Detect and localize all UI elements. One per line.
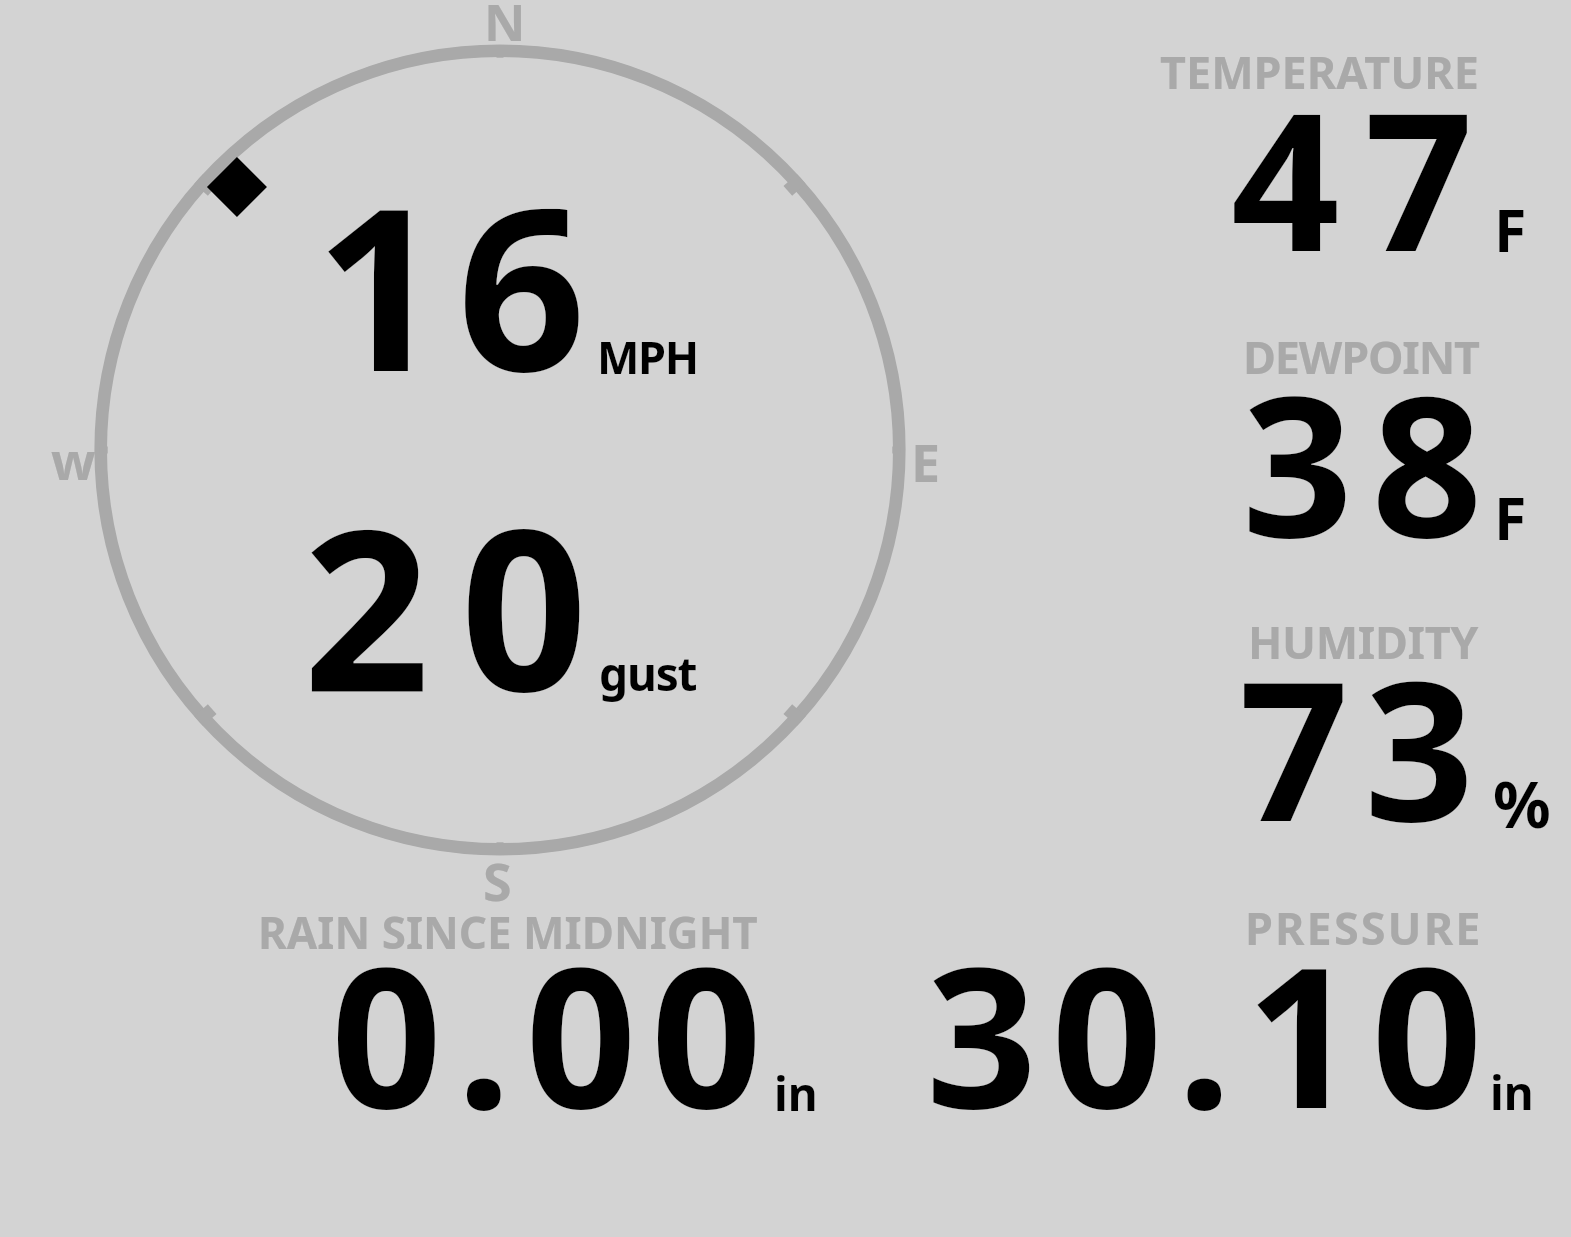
staticText: w <box>51 424 96 495</box>
staticText: gust <box>599 642 697 705</box>
button[interactable]: Rain since midnight 0.00 inches <box>250 900 830 1125</box>
button[interactable]: Wind: 16 miles per hour, gusting 20, fro… <box>94 44 906 856</box>
staticText: 73 <box>1239 616 1490 878</box>
button[interactable]: Pressure 30.10 inches <box>900 895 1540 1125</box>
staticText: in <box>774 1062 818 1125</box>
staticText: 30.10 <box>926 901 1498 1165</box>
staticText: TEMPERATURE <box>1160 41 1479 102</box>
staticText: 20 <box>303 454 618 756</box>
staticText: 47 <box>1231 48 1498 307</box>
staticText: F <box>1494 477 1527 557</box>
staticText: E <box>911 426 941 497</box>
staticText: DEWPOINT <box>1243 326 1479 387</box>
button[interactable]: Dewpoint 38 degrees Fahrenheit <box>1150 325 1571 555</box>
button[interactable]: Temperature 47 degrees Fahrenheit <box>1150 40 1571 270</box>
staticText: PRESSURE <box>1245 897 1483 958</box>
staticText: N <box>484 0 526 55</box>
staticText: HUMIDITY <box>1248 611 1479 672</box>
staticText: RAIN SINCE MIDNIGHT <box>258 902 758 962</box>
staticText: S <box>483 845 512 916</box>
staticText: in <box>1490 1061 1534 1124</box>
staticText: 0.00 <box>331 901 777 1165</box>
staticText: 16 <box>315 130 600 436</box>
staticText: F <box>1494 189 1527 269</box>
staticText: % <box>1493 760 1551 847</box>
staticText: MPH <box>597 326 698 387</box>
button[interactable]: Humidity 73 percent <box>1150 610 1571 840</box>
staticText: 38 <box>1242 330 1501 594</box>
